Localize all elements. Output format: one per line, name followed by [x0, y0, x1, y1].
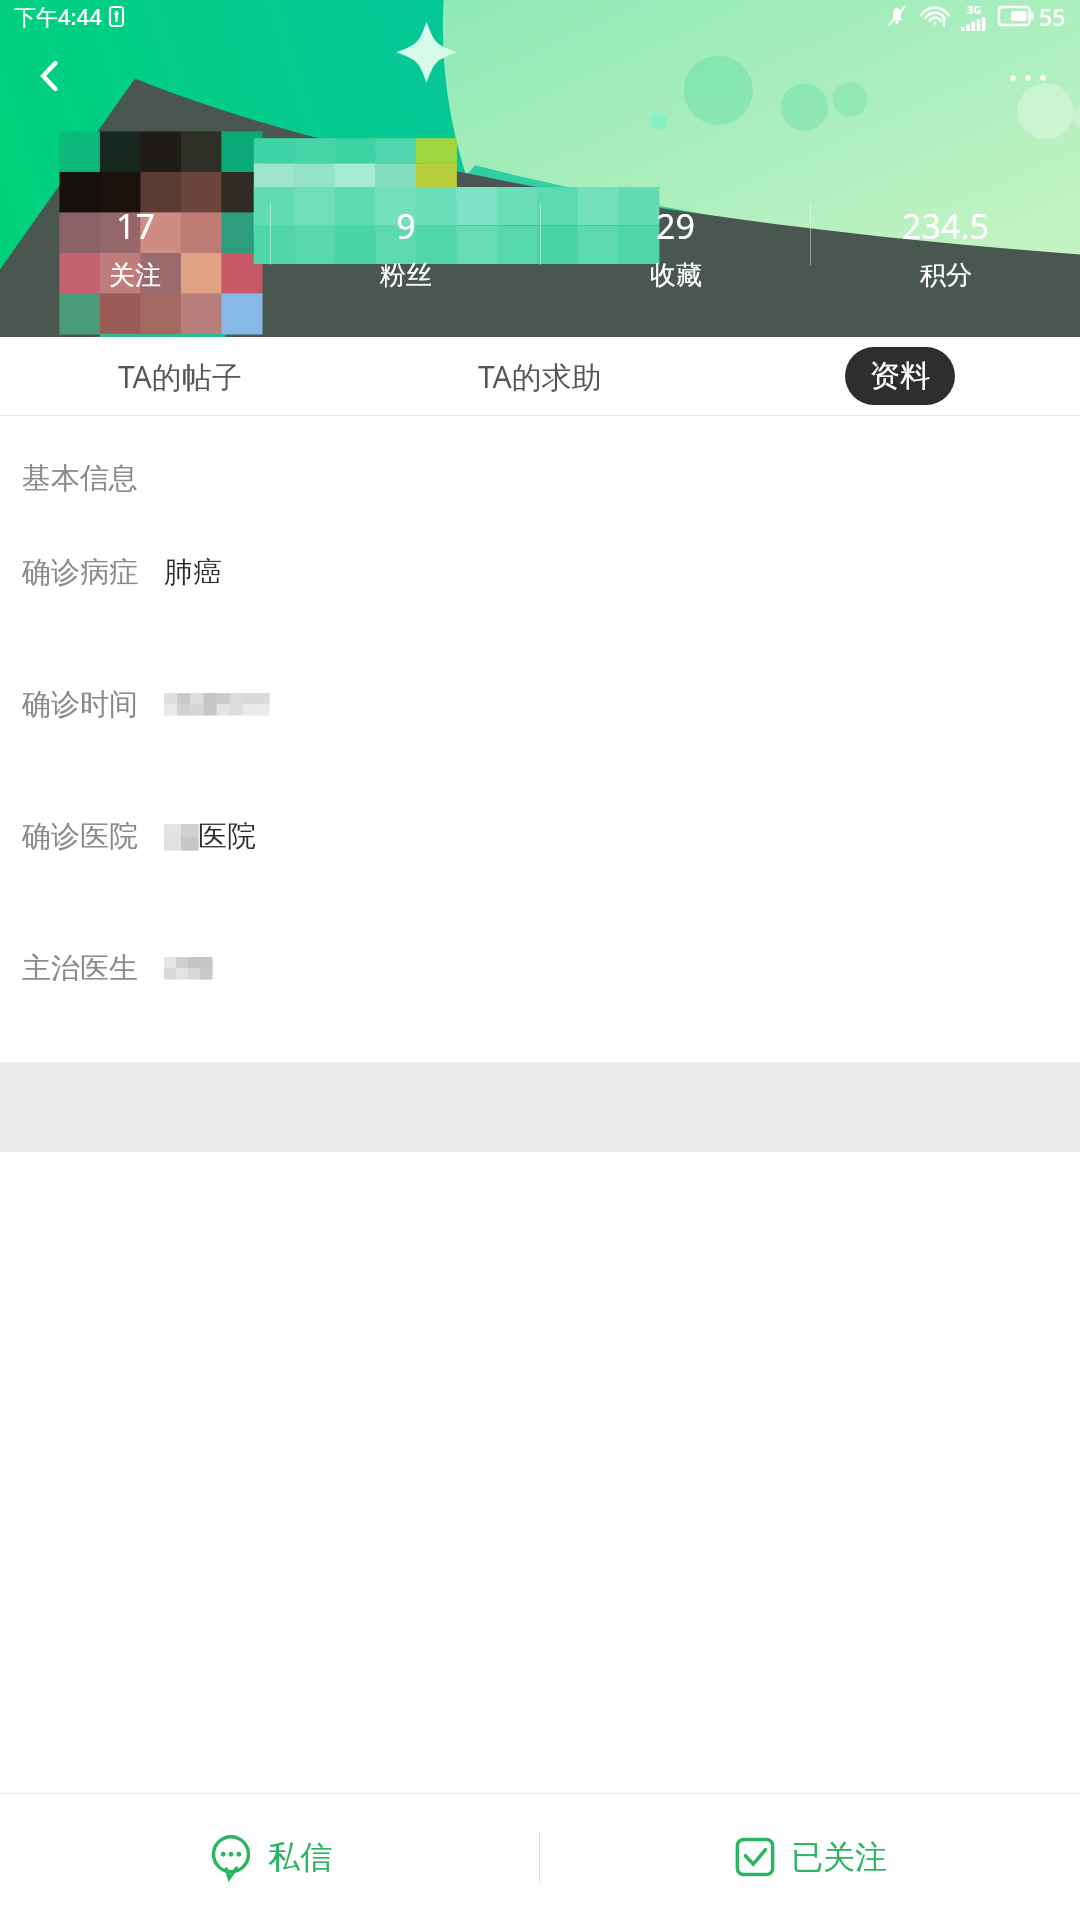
staticText: 关注: [109, 259, 161, 292]
staticText: 3G: [967, 2, 982, 17]
staticText: TA的帖子: [118, 356, 242, 397]
button[interactable]: TA的求助: [360, 337, 720, 415]
button[interactable]: 确诊医院: [22, 770, 1080, 902]
staticText: 确诊病症: [22, 554, 138, 591]
staticText: 234.5: [902, 203, 989, 249]
staticText: 下午4:44: [14, 1, 102, 31]
button[interactable]: 17: [0, 203, 270, 313]
staticText: 医院: [198, 818, 256, 855]
button[interactable]: TA的帖子: [0, 337, 360, 415]
staticText: 9: [396, 203, 416, 249]
staticText: 粉丝: [380, 259, 432, 292]
staticText: TA的求助: [478, 356, 602, 397]
staticText: 收藏: [650, 259, 702, 292]
button[interactable]: 234.5: [811, 203, 1080, 313]
staticText: 肺癌: [164, 554, 222, 591]
button[interactable]: 资料: [845, 347, 955, 405]
staticText: 确诊医院: [22, 818, 138, 855]
staticText: 已关注: [791, 1837, 887, 1877]
button[interactable]: Back: [22, 48, 78, 104]
button[interactable]: 已关注: [540, 1794, 1080, 1920]
staticText: 基本信息: [22, 460, 138, 497]
button[interactable]: 确诊时间: [22, 638, 1080, 770]
staticText: 积分: [920, 259, 972, 292]
staticText: 私信: [268, 1837, 332, 1877]
button[interactable]: 私信: [0, 1794, 539, 1920]
staticText: 29: [656, 203, 695, 249]
button[interactable]: 主治医生: [22, 902, 1080, 1034]
staticText: 17: [116, 203, 155, 249]
staticText: 主治医生: [22, 950, 138, 987]
staticText: 资料: [870, 357, 930, 395]
button[interactable]: 确诊病症: [22, 506, 1080, 638]
staticText: 55: [1039, 1, 1066, 32]
button[interactable]: 29: [541, 203, 810, 313]
staticText: 确诊时间: [22, 686, 138, 723]
button[interactable]: More options: [998, 48, 1058, 108]
button[interactable]: 9: [271, 203, 540, 313]
